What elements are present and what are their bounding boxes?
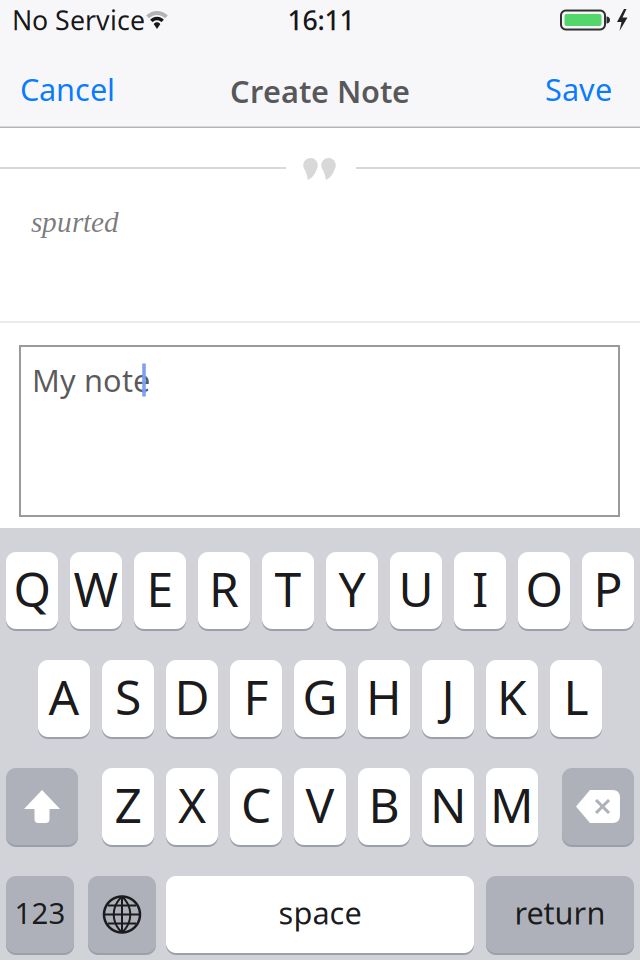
button[interactable]: Note text [20,346,619,516]
staticText: space [278,892,361,933]
button[interactable]: A [38,659,90,738]
staticText: U [398,557,433,620]
staticText: V [305,773,334,836]
button[interactable]: 123 [6,875,74,954]
button[interactable]: space [166,875,474,954]
staticText: spurted [31,206,119,238]
button[interactable]: O [518,551,570,630]
staticText: R [209,557,239,620]
staticText: D [174,665,209,728]
staticText: G [302,665,337,728]
staticText: O [525,557,562,620]
button[interactable]: C [230,767,282,846]
button[interactable]: T [262,551,314,630]
button[interactable]: Z [102,767,154,846]
button[interactable]: E [134,551,186,630]
staticText: F [243,665,268,728]
button[interactable]: N [422,767,474,846]
staticText: I [472,557,488,620]
staticText: H [366,665,402,728]
button[interactable]: W [70,551,122,630]
button[interactable]: Shift [6,767,78,846]
staticText: E [146,557,173,620]
button[interactable]: Save [529,45,640,133]
staticText: T [274,557,301,620]
staticText: W [73,557,118,620]
staticText: My note [32,360,150,400]
staticText: N [430,773,466,836]
button[interactable]: D [166,659,218,738]
button[interactable]: Y [326,551,378,630]
button[interactable]: V [294,767,346,846]
button[interactable]: L [550,659,602,738]
button[interactable]: S [102,659,154,738]
staticText: No Service [12,2,145,38]
button[interactable]: U [390,551,442,630]
staticText: Z [114,773,141,836]
staticText: A [48,665,79,728]
staticText: C [241,773,271,836]
staticText: B [368,773,399,836]
staticText: K [497,665,527,728]
staticText: M [490,773,534,836]
button[interactable]: F [230,659,282,738]
button[interactable]: H [358,659,410,738]
staticText: J [441,665,454,728]
button[interactable]: J [422,659,474,738]
button[interactable]: B [358,767,410,846]
button[interactable]: I [454,551,506,630]
staticText: S [115,665,141,728]
button[interactable]: R [198,551,250,630]
button[interactable]: Next keyboard [88,875,156,954]
staticText: Q [13,557,50,620]
button[interactable]: return [486,875,634,954]
staticText: 123 [14,893,65,932]
staticText: X [178,773,206,836]
button[interactable]: P [582,551,634,630]
staticText: Cancel [20,69,115,109]
staticText: Y [338,557,365,620]
staticText: 16:11 [287,2,354,38]
button[interactable]: Delete [562,767,634,846]
staticText: P [593,557,622,620]
staticText: Create Note [230,71,410,111]
button[interactable]: K [486,659,538,738]
button[interactable]: G [294,659,346,738]
staticText: return [514,892,605,933]
button[interactable]: Cancel [0,45,131,133]
staticText: Save [545,69,612,109]
button[interactable]: Q [6,551,58,630]
button[interactable]: M [486,767,538,846]
staticText: L [563,665,588,728]
button[interactable]: X [166,767,218,846]
